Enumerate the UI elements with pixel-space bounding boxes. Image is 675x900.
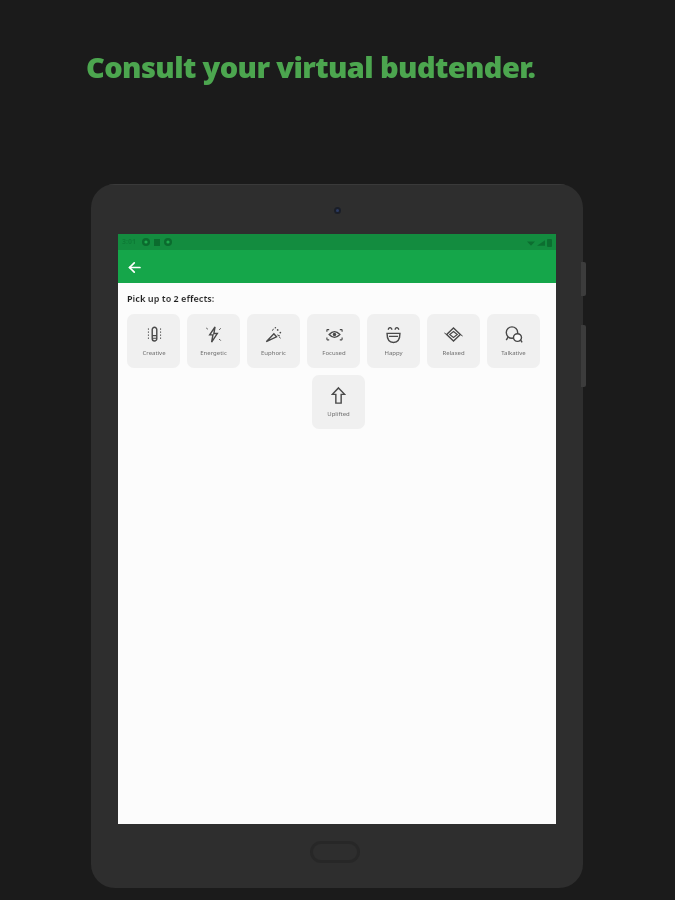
staticText: Talkative [501, 349, 526, 357]
button[interactable]: Relaxed [427, 314, 480, 368]
staticText: Focused [322, 349, 346, 357]
staticText: Relaxed [442, 349, 465, 357]
staticText: Euphoric [261, 349, 286, 357]
button[interactable]: Talkative [487, 314, 540, 368]
button[interactable]: Focused [307, 314, 360, 368]
staticText: Creative [142, 349, 166, 357]
staticText: Pick up to 2 effects: [127, 292, 215, 304]
staticText: Energetic [200, 349, 227, 357]
button[interactable]: Back [122, 255, 146, 279]
button[interactable]: Creative [127, 314, 180, 368]
button[interactable]: Home [310, 841, 360, 863]
staticText: Consult your virtual budtender. [86, 47, 536, 86]
button[interactable]: Happy [367, 314, 420, 368]
button[interactable]: Energetic [187, 314, 240, 368]
staticText: Happy [384, 349, 403, 357]
button[interactable]: Uplifted [312, 375, 365, 429]
staticText: Uplifted [327, 410, 350, 418]
button[interactable]: Euphoric [247, 314, 300, 368]
staticText: 3:01 [122, 237, 136, 247]
